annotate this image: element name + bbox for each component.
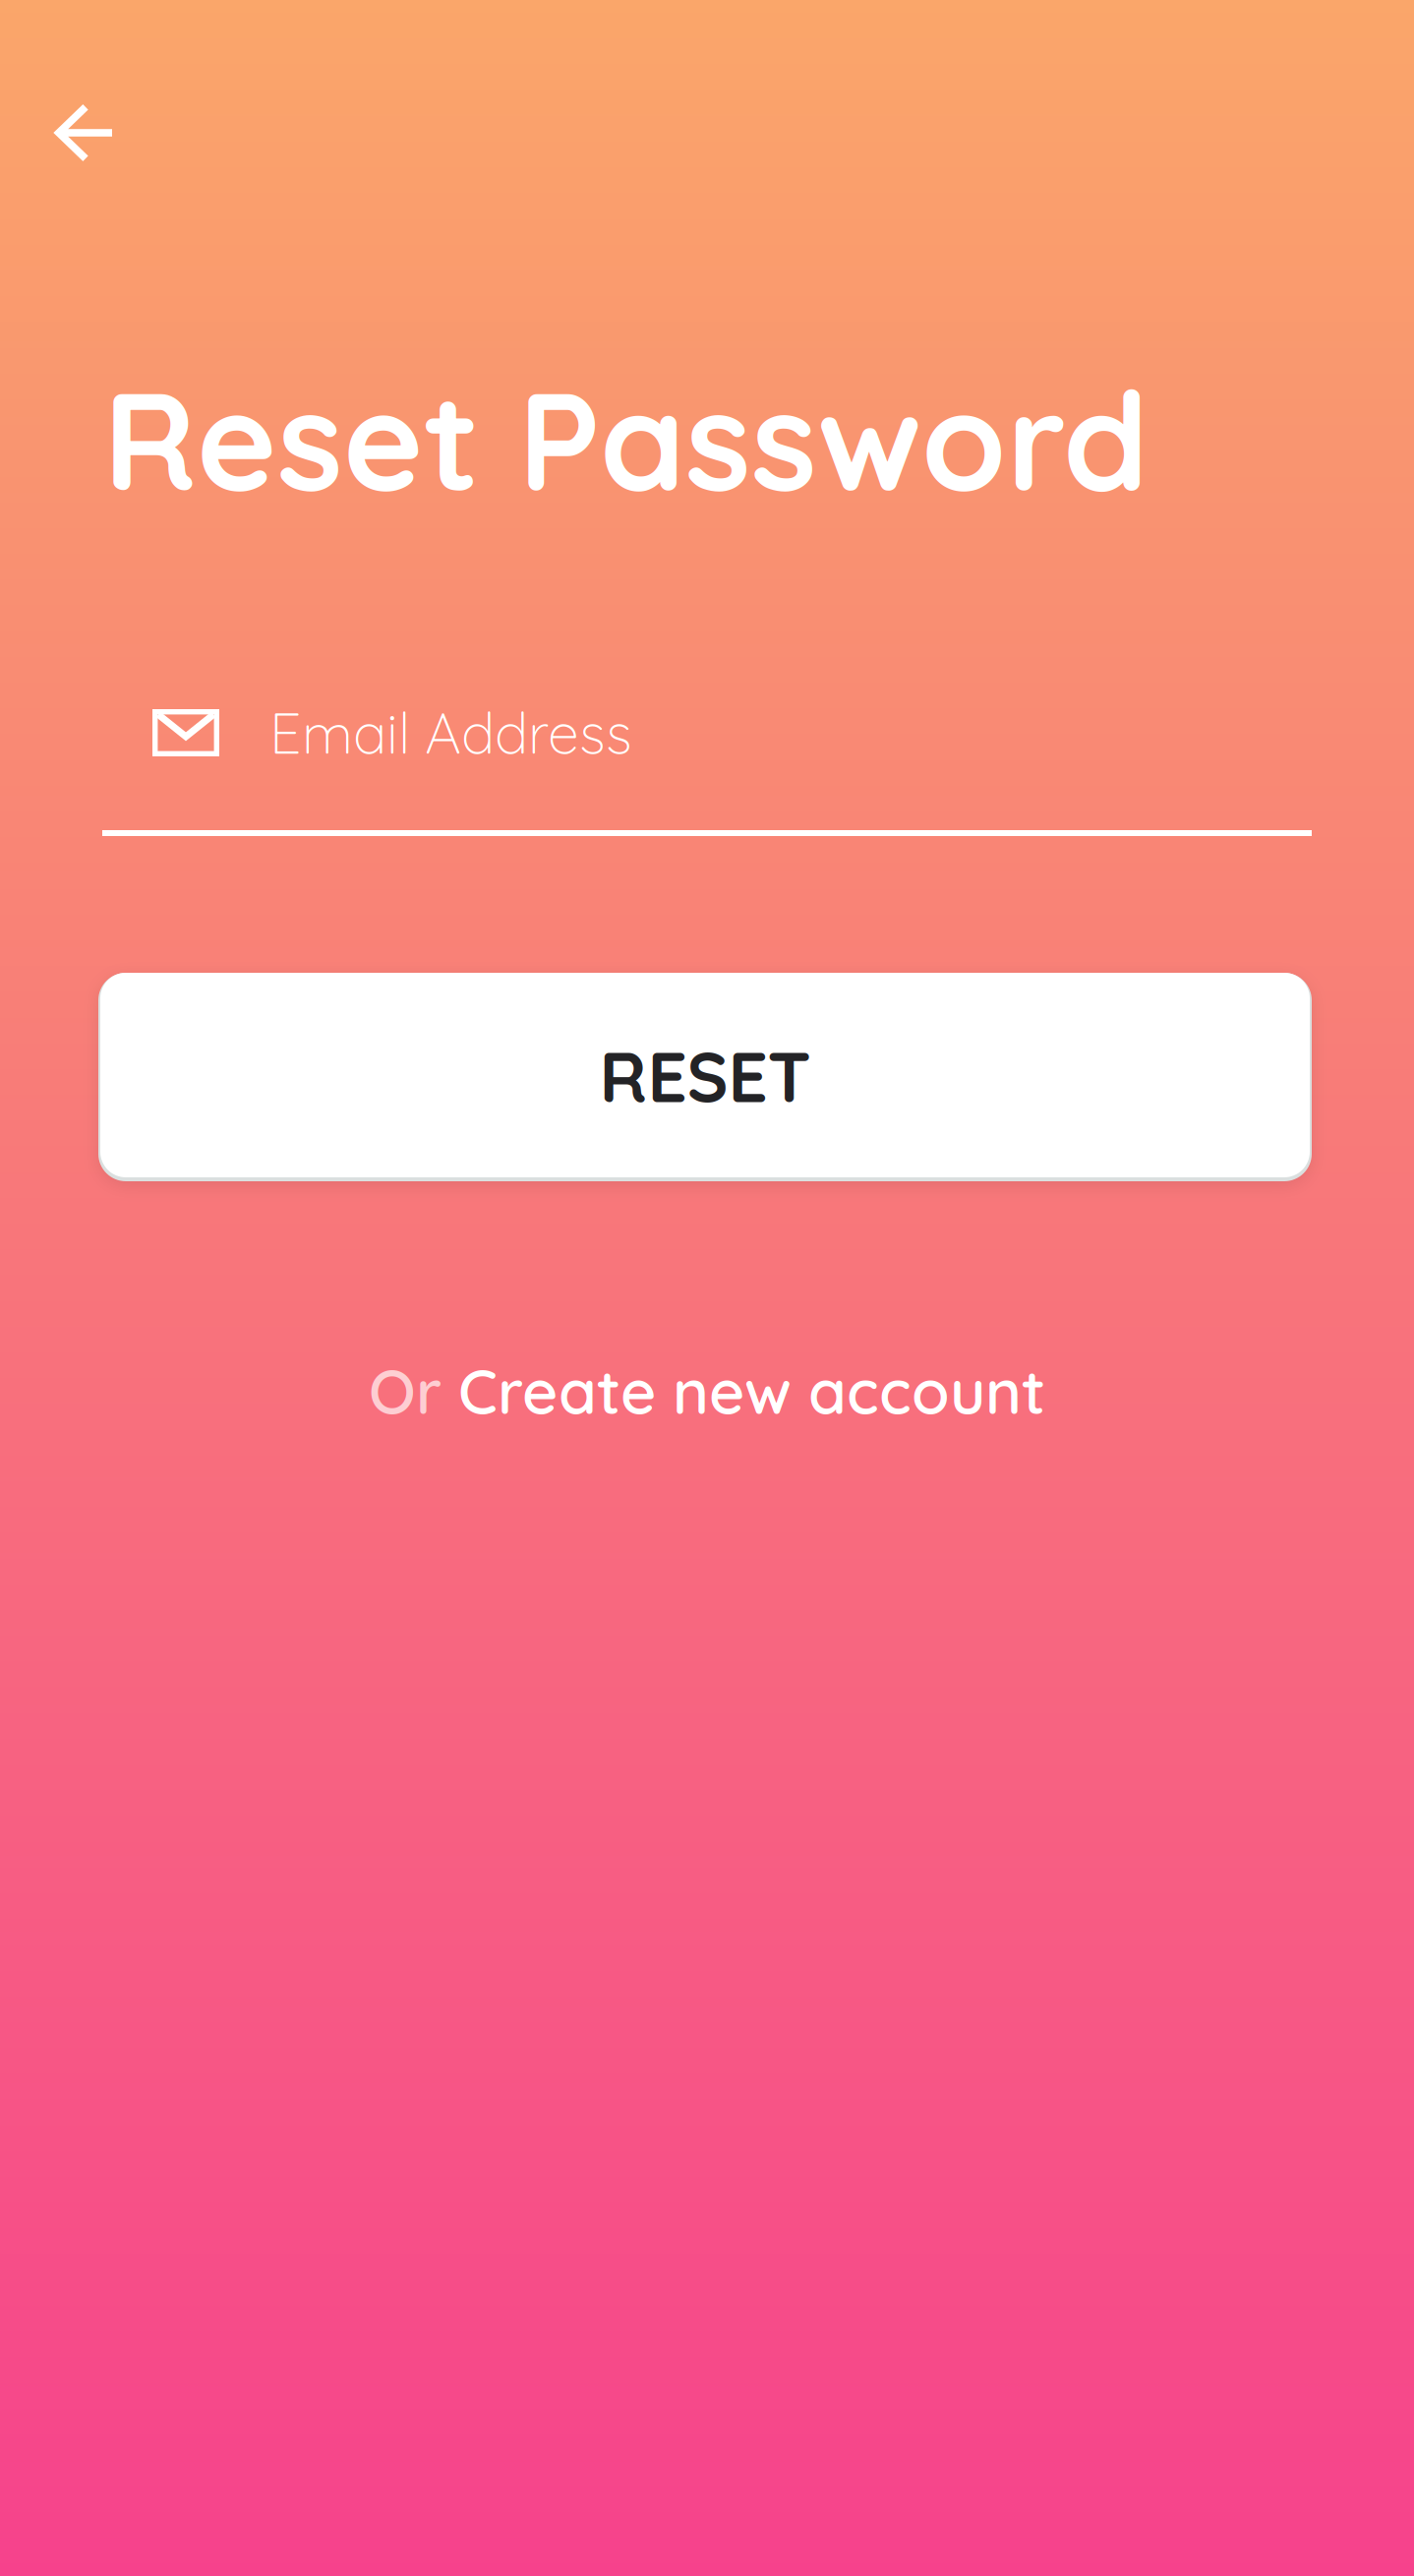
staticText: Email Address [269, 697, 632, 768]
staticText: Or [369, 1352, 458, 1429]
staticText: Create new account [458, 1352, 1045, 1429]
staticText: RESET [599, 1033, 811, 1119]
staticText: Reset Password [103, 354, 1149, 525]
button[interactable]: Back [5, 55, 162, 212]
button[interactable]: Or [0, 1337, 1414, 1445]
button[interactable]: RESET [102, 973, 1312, 1181]
